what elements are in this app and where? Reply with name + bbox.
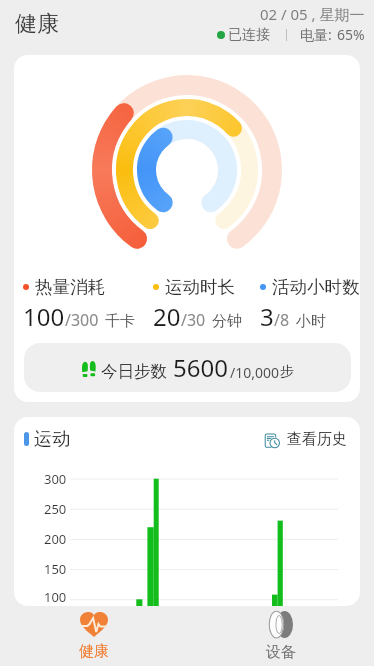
- staticText: 健康: [79, 642, 109, 661]
- staticText: /10,000: [230, 363, 279, 382]
- staticText: 3: [260, 300, 274, 333]
- staticText: 运动: [34, 428, 70, 451]
- staticText: 150: [44, 560, 67, 578]
- staticText: 100: [44, 588, 67, 606]
- staticText: 250: [44, 500, 67, 518]
- staticText: 65%: [337, 25, 365, 44]
- staticText: 活动小时数: [272, 276, 360, 298]
- staticText: /300: [65, 309, 99, 331]
- staticText: 查看历史: [287, 430, 347, 449]
- staticText: /30: [181, 309, 206, 331]
- button[interactable]: 查看历史: [262, 430, 347, 449]
- staticText: 电量:: [300, 25, 332, 44]
- staticText: 健康: [15, 10, 59, 38]
- staticText: 步: [280, 363, 294, 381]
- button[interactable]: 健康: [0, 606, 187, 666]
- staticText: 热量消耗: [35, 276, 105, 298]
- staticText: 设备: [266, 643, 296, 662]
- staticText: /8: [274, 309, 290, 331]
- staticText: 300: [44, 470, 67, 488]
- staticText: 运动时长: [165, 276, 235, 298]
- button[interactable]: 设备: [187, 606, 374, 666]
- button[interactable]: 今日步数: [24, 343, 351, 392]
- staticText: 分钟: [212, 312, 242, 331]
- staticText: 200: [44, 530, 67, 548]
- staticText: 小时: [296, 312, 326, 331]
- staticText: 今日步数: [101, 361, 167, 382]
- staticText: 5600: [173, 351, 228, 384]
- staticText: 100: [23, 300, 65, 333]
- staticText: 已连接: [228, 26, 270, 44]
- staticText: 千卡: [105, 312, 135, 331]
- staticText: 20: [153, 300, 181, 333]
- staticText: 02 / 05 , 星期一: [260, 4, 365, 24]
